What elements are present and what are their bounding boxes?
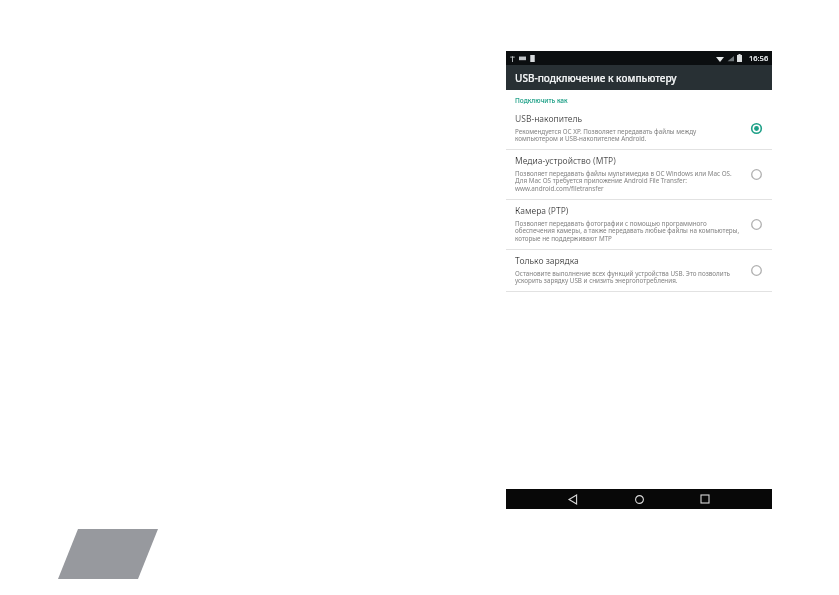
- button[interactable]: Select: [746, 260, 766, 280]
- staticText: Позволяет передавать файлы мультимедиа в…: [515, 169, 740, 193]
- staticText: Подключить как: [515, 96, 568, 105]
- staticText: 16:56: [749, 53, 769, 63]
- staticText: Камера (PTP): [515, 205, 569, 217]
- staticText: Только зарядка: [515, 255, 579, 267]
- button[interactable]: Select: [746, 214, 766, 234]
- button[interactable]: Медиа-устройство (MTP): [506, 150, 772, 199]
- button[interactable]: Только зарядка: [506, 250, 772, 291]
- button[interactable]: Home: [626, 489, 652, 509]
- button[interactable]: Recent apps: [692, 489, 718, 509]
- button[interactable]: Back: [560, 489, 586, 509]
- staticText: Медиа-устройство (MTP): [515, 155, 616, 167]
- staticText: Рекомендуется ОС XP. Позволяет передават…: [515, 127, 740, 143]
- staticText: Остановите выполнение всех функций устро…: [515, 269, 740, 285]
- button[interactable]: Selected: [746, 118, 766, 138]
- staticText: Позволяет передавать фотографии с помощь…: [515, 219, 740, 243]
- button[interactable]: Камера (PTP): [506, 200, 772, 249]
- staticText: USB-подключение к компьютеру: [515, 71, 677, 85]
- button[interactable]: USB-накопитель: [506, 108, 772, 149]
- staticText: USB-накопитель: [515, 113, 583, 125]
- button[interactable]: Select: [746, 164, 766, 184]
